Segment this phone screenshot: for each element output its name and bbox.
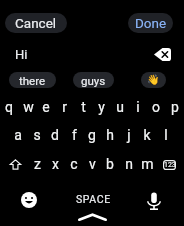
button[interactable]: s <box>28 124 46 146</box>
button[interactable]: d <box>46 124 64 146</box>
staticText: Hi <box>15 47 28 62</box>
staticText: w <box>23 99 34 115</box>
button[interactable]: Shift <box>6 154 24 175</box>
staticText: a <box>14 127 22 143</box>
staticText: 👋 <box>147 74 160 86</box>
button[interactable]: x <box>46 153 64 175</box>
staticText: j <box>127 127 131 143</box>
staticText: c <box>70 156 78 172</box>
button[interactable]: Done <box>128 13 173 33</box>
button[interactable]: guys <box>73 72 114 88</box>
staticText: 123 <box>164 161 176 169</box>
button[interactable]: r <box>55 96 73 118</box>
button[interactable]: j <box>120 124 138 146</box>
button[interactable]: b <box>101 153 119 175</box>
staticText: t <box>81 99 86 115</box>
button[interactable]: a <box>9 124 27 146</box>
staticText: SPACE <box>76 193 111 205</box>
staticText: Cancel <box>15 15 57 31</box>
button[interactable]: i <box>129 96 147 118</box>
button[interactable]: f <box>65 124 83 146</box>
button[interactable]: m <box>138 153 156 175</box>
staticText: g <box>88 127 96 143</box>
button[interactable]: t <box>74 96 92 118</box>
staticText: l <box>164 127 168 143</box>
button[interactable]: v <box>83 153 101 175</box>
button[interactable]: Voice input <box>139 186 169 216</box>
staticText: r <box>62 99 67 115</box>
staticText: there <box>19 74 46 87</box>
button[interactable]: Backspace <box>154 48 171 61</box>
staticText: h <box>106 127 114 143</box>
staticText: e <box>42 99 50 115</box>
staticText: Done <box>135 15 167 31</box>
button[interactable]: k <box>138 124 156 146</box>
button[interactable]: Emoji suggestion <box>141 72 166 88</box>
button[interactable]: h <box>101 124 119 146</box>
button[interactable]: Expand keyboard <box>78 212 107 222</box>
button[interactable]: z <box>28 153 46 175</box>
button[interactable]: q <box>0 96 18 118</box>
button[interactable]: u <box>111 96 129 118</box>
staticText: s <box>33 127 41 143</box>
button[interactable]: there <box>9 72 56 88</box>
button[interactable]: SPACE <box>60 186 126 212</box>
button[interactable]: w <box>19 96 37 118</box>
button[interactable]: p <box>166 96 184 118</box>
button[interactable]: e <box>37 96 55 118</box>
staticText: i <box>136 99 140 115</box>
staticText: f <box>72 127 77 143</box>
staticText: b <box>106 156 114 172</box>
button[interactable]: n <box>120 153 138 175</box>
staticText: k <box>143 127 151 143</box>
staticText: guys <box>81 74 106 87</box>
button[interactable]: c <box>65 153 83 175</box>
staticText: n <box>125 156 133 172</box>
staticText: x <box>52 156 59 172</box>
staticText: m <box>141 156 154 172</box>
staticText: p <box>171 99 179 115</box>
button[interactable]: Emoji keyboard <box>14 185 44 215</box>
button[interactable]: g <box>83 124 101 146</box>
staticText: z <box>34 156 41 172</box>
staticText: y <box>98 99 105 115</box>
staticText: u <box>116 99 124 115</box>
staticText: d <box>51 127 59 143</box>
button[interactable]: Numbers and symbols <box>160 154 178 175</box>
button[interactable]: l <box>157 124 175 146</box>
button[interactable]: y <box>92 96 110 118</box>
button[interactable]: o <box>147 96 165 118</box>
button[interactable]: Cancel <box>5 13 67 33</box>
staticText: q <box>5 99 13 115</box>
staticText: v <box>89 156 96 172</box>
staticText: o <box>152 99 160 115</box>
